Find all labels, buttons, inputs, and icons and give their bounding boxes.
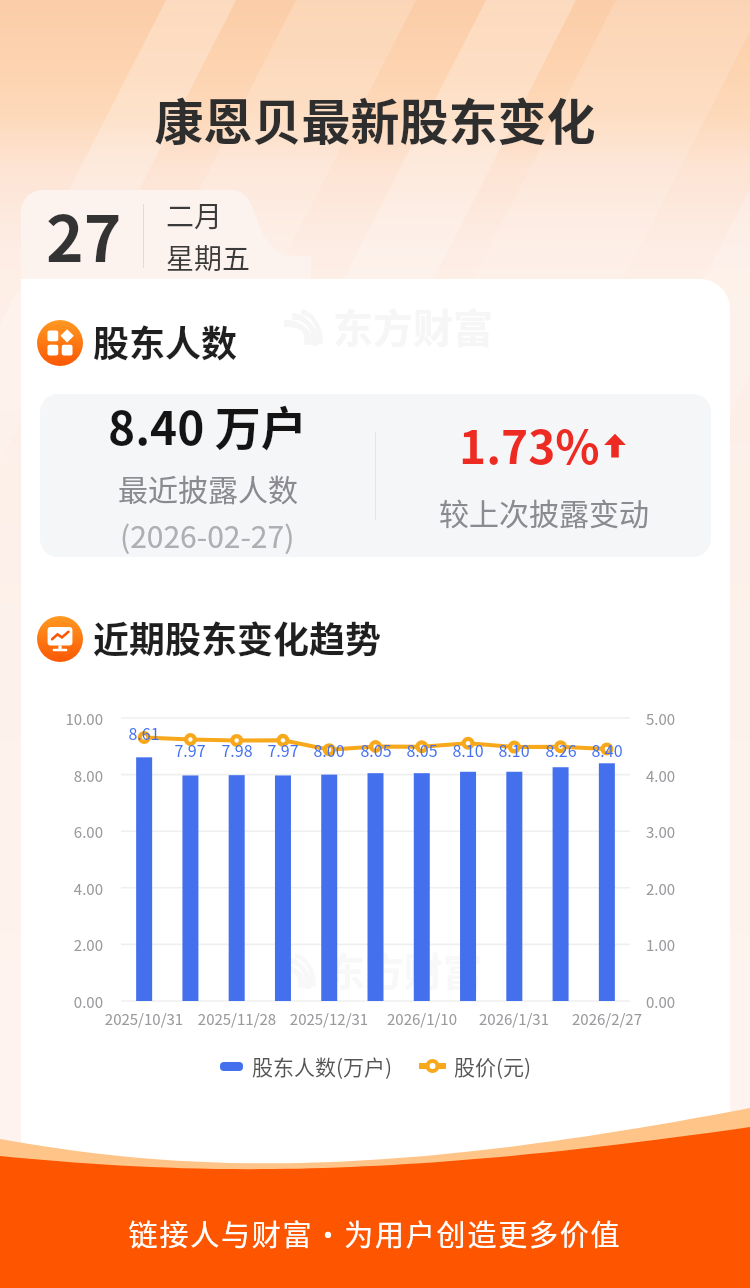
staticText: 7.97 xyxy=(251,738,315,761)
staticText: (2026-02-27) xyxy=(120,513,295,555)
staticText: 8.10 xyxy=(482,738,546,761)
staticText: 8.61 xyxy=(112,721,176,744)
button[interactable]: 近期股东变化趋势 xyxy=(37,613,382,665)
staticText: 较上次披露变动 xyxy=(439,490,649,533)
staticText: 2.00 xyxy=(646,878,706,900)
staticText: 8.10 xyxy=(436,738,500,761)
staticText: 股东人数 xyxy=(93,315,238,367)
staticText: 8.40 xyxy=(575,738,639,761)
staticText: 1.73% xyxy=(459,411,600,478)
staticText: 2025/10/31 xyxy=(84,1008,204,1030)
button[interactable]: 27 xyxy=(21,190,311,282)
staticText: 2025/12/31 xyxy=(269,1008,389,1030)
staticText: 8.00 xyxy=(43,765,103,787)
staticText: 8.40 万户 xyxy=(108,394,307,459)
staticText: 8.05 xyxy=(344,738,408,761)
staticText: 2025/11/28 xyxy=(177,1008,297,1030)
staticText: 7.97 xyxy=(158,738,222,761)
staticText: 4.00 xyxy=(43,878,103,900)
staticText: 3.00 xyxy=(646,821,706,843)
staticText: 最近披露人数 xyxy=(118,466,298,509)
staticText: 链接人与财富·为用户创造更多价值 xyxy=(0,1212,750,1254)
button[interactable]: 股东人数 xyxy=(37,320,83,366)
staticText: 股价(元) xyxy=(454,1051,532,1081)
staticText: 8.26 xyxy=(529,738,593,761)
staticText: 东方财富 xyxy=(326,941,483,997)
staticText: 10.00 xyxy=(43,708,103,730)
staticText: 8.05 xyxy=(390,738,454,761)
staticText: 东方财富 xyxy=(333,297,493,355)
button[interactable]: 近期股东变化趋势 xyxy=(37,616,83,662)
staticText: 27 xyxy=(46,188,122,280)
staticText: 2.00 xyxy=(43,934,103,956)
staticText: 近期股东变化趋势 xyxy=(93,611,382,663)
staticText: 二月 xyxy=(166,195,223,236)
staticText: 8.00 xyxy=(297,738,361,761)
staticText: 0.00 xyxy=(646,991,706,1013)
staticText: 0.00 xyxy=(43,991,103,1013)
staticText: 1.00 xyxy=(646,934,706,956)
staticText: 股东人数(万户) xyxy=(252,1051,393,1081)
staticText: 6.00 xyxy=(43,821,103,843)
staticText: 5.00 xyxy=(646,708,706,730)
staticText: 2026/1/10 xyxy=(362,1008,482,1030)
staticText: 2026/2/27 xyxy=(547,1008,667,1030)
staticText: 星期五 xyxy=(166,237,251,278)
staticText: 7.98 xyxy=(205,738,269,761)
button[interactable]: 股东人数 xyxy=(37,317,238,369)
staticText: 2026/1/31 xyxy=(454,1008,574,1030)
staticText: 康恩贝最新股东变化 xyxy=(0,83,750,154)
staticText: 4.00 xyxy=(646,765,706,787)
